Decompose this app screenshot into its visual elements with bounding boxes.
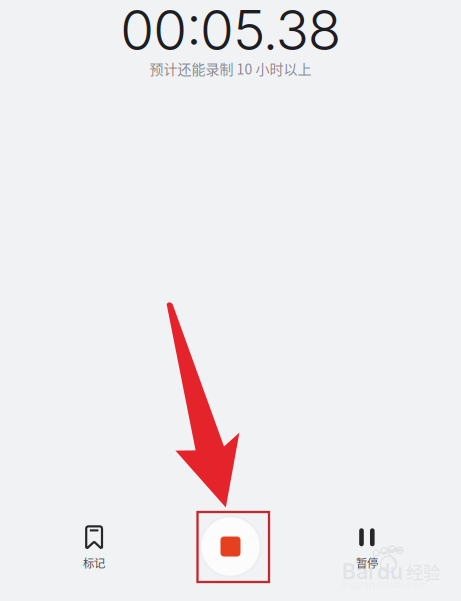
staticText: 经验 bbox=[406, 559, 440, 584]
staticText: 标记 bbox=[83, 554, 105, 571]
staticText: 预计还能录制 10 小时以上 bbox=[149, 58, 311, 78]
button[interactable]: 停止录音 bbox=[162, 512, 299, 584]
staticText: jingyan.baidu.com bbox=[341, 578, 428, 591]
button[interactable]: 标记 bbox=[26, 512, 162, 584]
staticText: 00:05.38 bbox=[120, 0, 341, 63]
button[interactable]: 暂停 bbox=[299, 512, 435, 584]
staticText: du bbox=[377, 559, 403, 584]
staticText: Bai bbox=[342, 559, 374, 584]
staticText: 暂停 bbox=[356, 554, 378, 571]
